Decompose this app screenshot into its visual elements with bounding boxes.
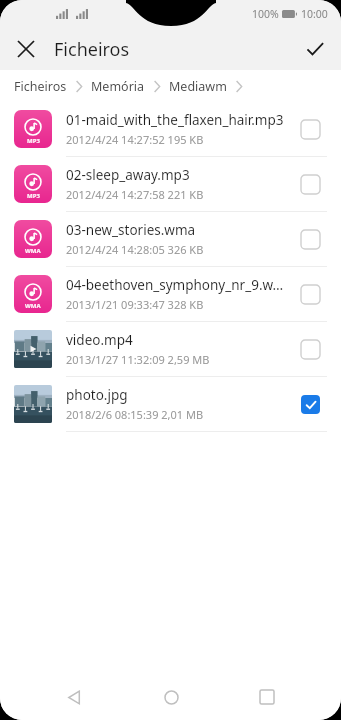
button[interactable]: Confirm — [297, 31, 333, 67]
staticText: 02-sleep_away.mp3 — [66, 166, 190, 184]
staticText: 04-beethoven_symphony_nr_9.w… — [66, 276, 284, 294]
staticText: 2013/1/27 11:32:09 2,59 MB — [66, 352, 210, 367]
staticText: 2012/4/24 14:27:58 221 KB — [66, 187, 204, 202]
staticText: 03-new_stories.wma — [66, 221, 196, 239]
button[interactable]: WMA — [0, 267, 341, 321]
staticText: Ficheiros — [54, 37, 130, 62]
staticText: MP3 — [27, 137, 40, 145]
button[interactable]: Not selected — [293, 222, 327, 256]
button[interactable]: Back — [51, 674, 97, 720]
staticText: 2013/1/21 09:33:47 328 KB — [66, 297, 204, 312]
button[interactable]: Not selected — [293, 277, 327, 311]
staticText: 2012/4/24 14:28:05 326 KB — [66, 242, 204, 257]
staticText: Ficheiros — [14, 78, 67, 95]
button[interactable]: Ficheiros — [14, 78, 67, 95]
staticText: photo.jpg — [66, 386, 128, 404]
staticText: Mediawm — [169, 78, 227, 95]
button[interactable]: MP3 — [0, 157, 341, 211]
staticText: MP3 — [27, 192, 40, 200]
button[interactable]: Not selected — [293, 112, 327, 146]
button[interactable]: Home — [148, 674, 194, 720]
button[interactable]: photo.jpg — [0, 377, 341, 431]
button[interactable]: Not selected — [293, 167, 327, 201]
button[interactable]: Close — [8, 31, 44, 67]
staticText: 10:00 — [301, 7, 328, 21]
button[interactable]: Mediawm — [169, 78, 227, 95]
staticText: Memória — [91, 78, 145, 95]
staticText: WMA — [25, 247, 41, 255]
button[interactable]: Memória — [91, 78, 145, 95]
staticText: video.mp4 — [66, 331, 133, 349]
staticText: 01-maid_with_the_flaxen_hair.mp3 — [66, 111, 284, 129]
staticText: 2018/2/6 08:15:39 2,01 MB — [66, 407, 204, 422]
button[interactable]: Selected — [293, 387, 327, 421]
button[interactable]: Recents — [244, 674, 290, 720]
button[interactable]: Not selected — [293, 332, 327, 366]
button[interactable]: WMA — [0, 212, 341, 266]
staticText: 2012/4/24 14:27:52 195 KB — [66, 132, 204, 147]
staticText: WMA — [25, 302, 41, 310]
button[interactable]: video.mp4 — [0, 322, 341, 376]
button[interactable]: MP3 — [0, 102, 341, 156]
staticText: 100% — [252, 7, 279, 21]
